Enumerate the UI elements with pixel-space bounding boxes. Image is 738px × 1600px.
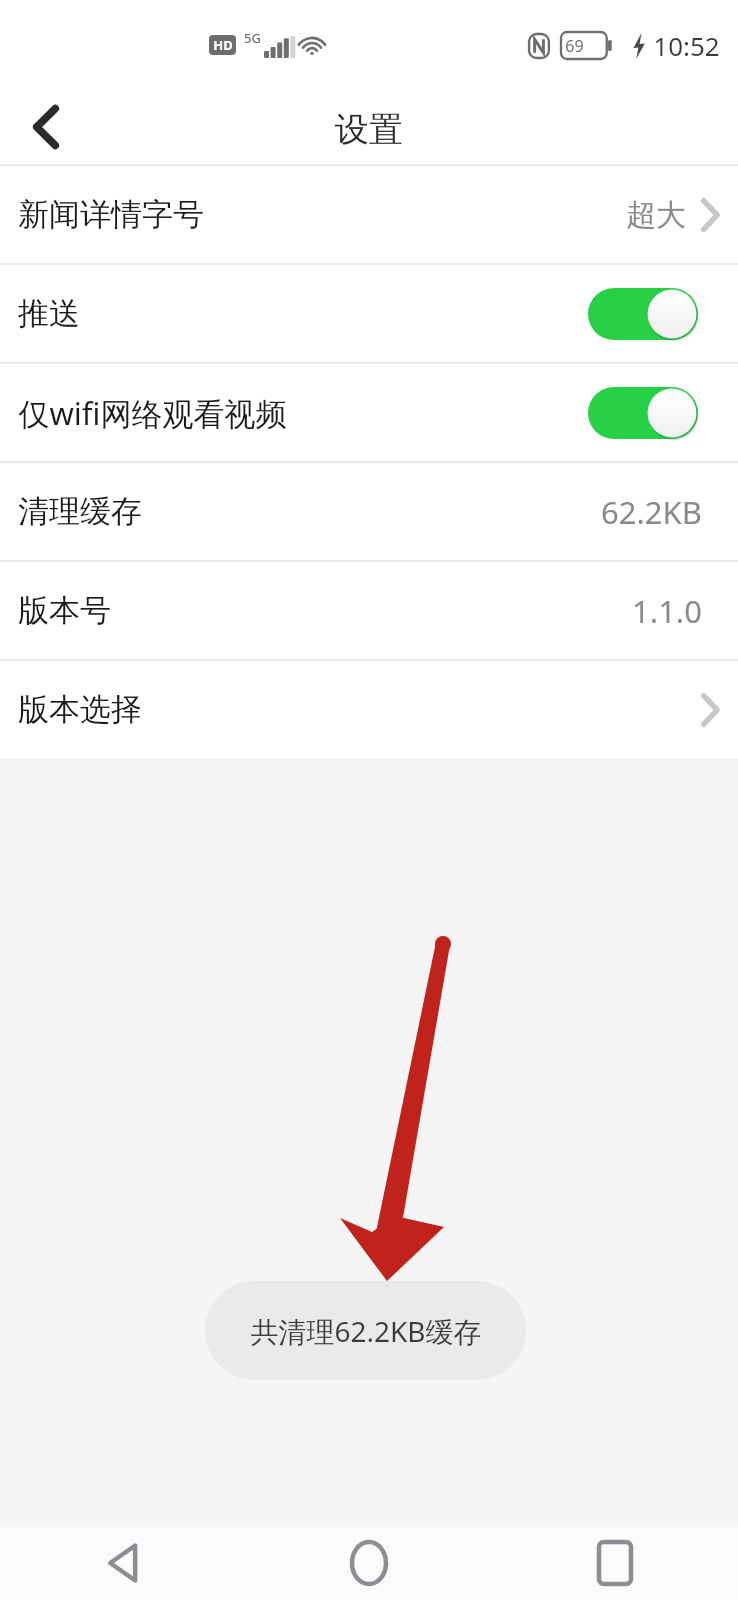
button[interactable]: 新闻详情字号 (0, 166, 738, 263)
staticText: 5G (244, 29, 261, 47)
button[interactable]: 版本选择 (0, 661, 738, 758)
staticText: 62.2KB (601, 491, 702, 533)
staticText: Baidu 经验 (566, 1532, 709, 1570)
button[interactable]: Home (246, 1525, 492, 1600)
staticText: 共清理62.2KB缓存 (250, 1312, 482, 1350)
staticText: 10:52 (653, 28, 720, 63)
staticText: 推送 (18, 294, 80, 333)
staticText: jingyan.baidu.com (566, 1568, 688, 1587)
button[interactable]: 共清理62.2KB缓存 (205, 1281, 526, 1380)
button[interactable]: 版本号 (0, 562, 738, 659)
staticText: 1.1.0 (632, 590, 702, 632)
button[interactable]: Toggle (588, 288, 698, 340)
button[interactable]: Toggle (588, 387, 698, 439)
button[interactable]: 清理缓存 (0, 463, 738, 560)
staticText: 仅wifi网络观看视频 (18, 392, 287, 434)
button[interactable]: Back (0, 88, 92, 166)
button[interactable]: 推送 (0, 265, 738, 362)
staticText: 新闻详情字号 (18, 195, 204, 234)
staticText: 版本号 (18, 591, 111, 630)
staticText: 清理缓存 (18, 492, 142, 531)
button[interactable]: 仅wifi网络观看视频 (0, 364, 738, 461)
staticText: 版本选择 (18, 690, 142, 729)
staticText: 超大 (626, 196, 686, 234)
button[interactable]: Back (0, 1525, 246, 1600)
button[interactable]: Recent apps (492, 1525, 738, 1600)
staticText: 设置 (335, 108, 403, 151)
staticText: 69 (565, 35, 584, 57)
staticText: HD (213, 36, 233, 54)
